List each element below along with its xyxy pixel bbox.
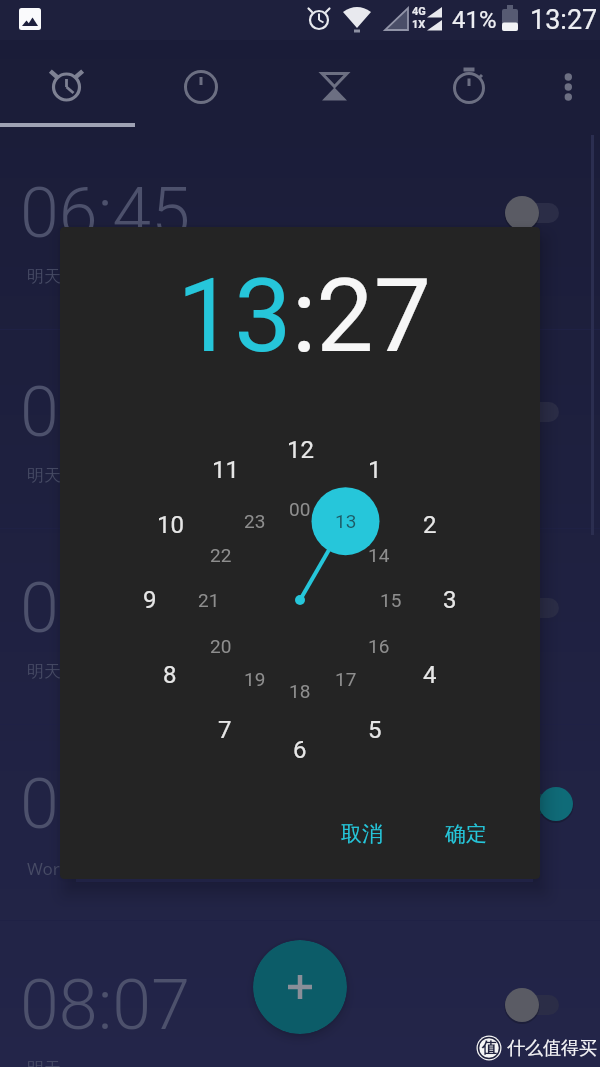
button[interactable] [0,706,600,903]
staticText: 17 [335,668,357,690]
button[interactable] [503,786,575,822]
staticText: 2 [423,511,437,539]
staticText: 18 [289,680,311,702]
button[interactable]: 取消 [317,810,407,858]
button[interactable] [270,40,405,135]
staticText: 10 [157,511,184,539]
button[interactable] [405,40,540,135]
staticText: 取消 [341,821,383,847]
button[interactable] [503,987,575,1023]
staticText: 23 [244,510,266,532]
staticText: 8 [163,661,177,689]
staticText: 00 [289,498,311,520]
staticText: 5 [368,716,382,744]
button[interactable] [253,940,347,1034]
staticText: 41% [452,6,497,34]
button[interactable] [503,590,575,626]
button[interactable] [0,40,135,135]
staticText: 明天 [27,465,61,486]
staticText: Workday [27,857,98,880]
staticText: 06:45 [20,172,191,254]
staticText: 22 [210,544,232,566]
button[interactable] [545,50,591,125]
staticText: 什么值得买 [507,1037,597,1060]
staticText: 1X [412,18,426,31]
staticText: 16 [368,635,390,657]
staticText: 15 [380,589,402,611]
button[interactable] [0,510,600,707]
staticText: 07:30 [20,567,191,649]
staticText: 08:00 [20,763,191,845]
staticText: 21 [198,589,220,611]
button[interactable] [0,314,600,511]
staticText: 明天 [27,661,61,682]
staticText: 13:27 [530,4,598,36]
staticText: 值 [482,1039,497,1058]
staticText: 1 [368,456,382,484]
button[interactable] [503,394,575,430]
staticText: 7 [218,716,232,744]
button[interactable] [503,195,575,231]
staticText: 13 [335,510,357,532]
staticText: 08:07 [20,964,191,1046]
staticText: 明天 [27,266,61,287]
staticText: 4G [412,5,426,18]
staticText: 12 [287,436,314,464]
staticText: 明天 [27,1058,61,1067]
staticText: 11 [212,456,239,484]
button[interactable] [0,115,600,312]
button[interactable]: 确定 [421,810,511,858]
staticText: 6 [293,736,307,764]
staticText: 4 [423,661,437,689]
staticText: 20 [210,635,232,657]
staticText: 9 [143,586,157,614]
staticText: 14 [368,544,390,566]
staticText: 07:00 [20,371,191,453]
button[interactable] [135,40,270,135]
button[interactable] [0,907,600,1067]
staticText: 19 [244,668,266,690]
staticText: 确定 [445,821,487,847]
staticText: 13:27 [177,256,432,370]
staticText: 3 [443,586,457,614]
